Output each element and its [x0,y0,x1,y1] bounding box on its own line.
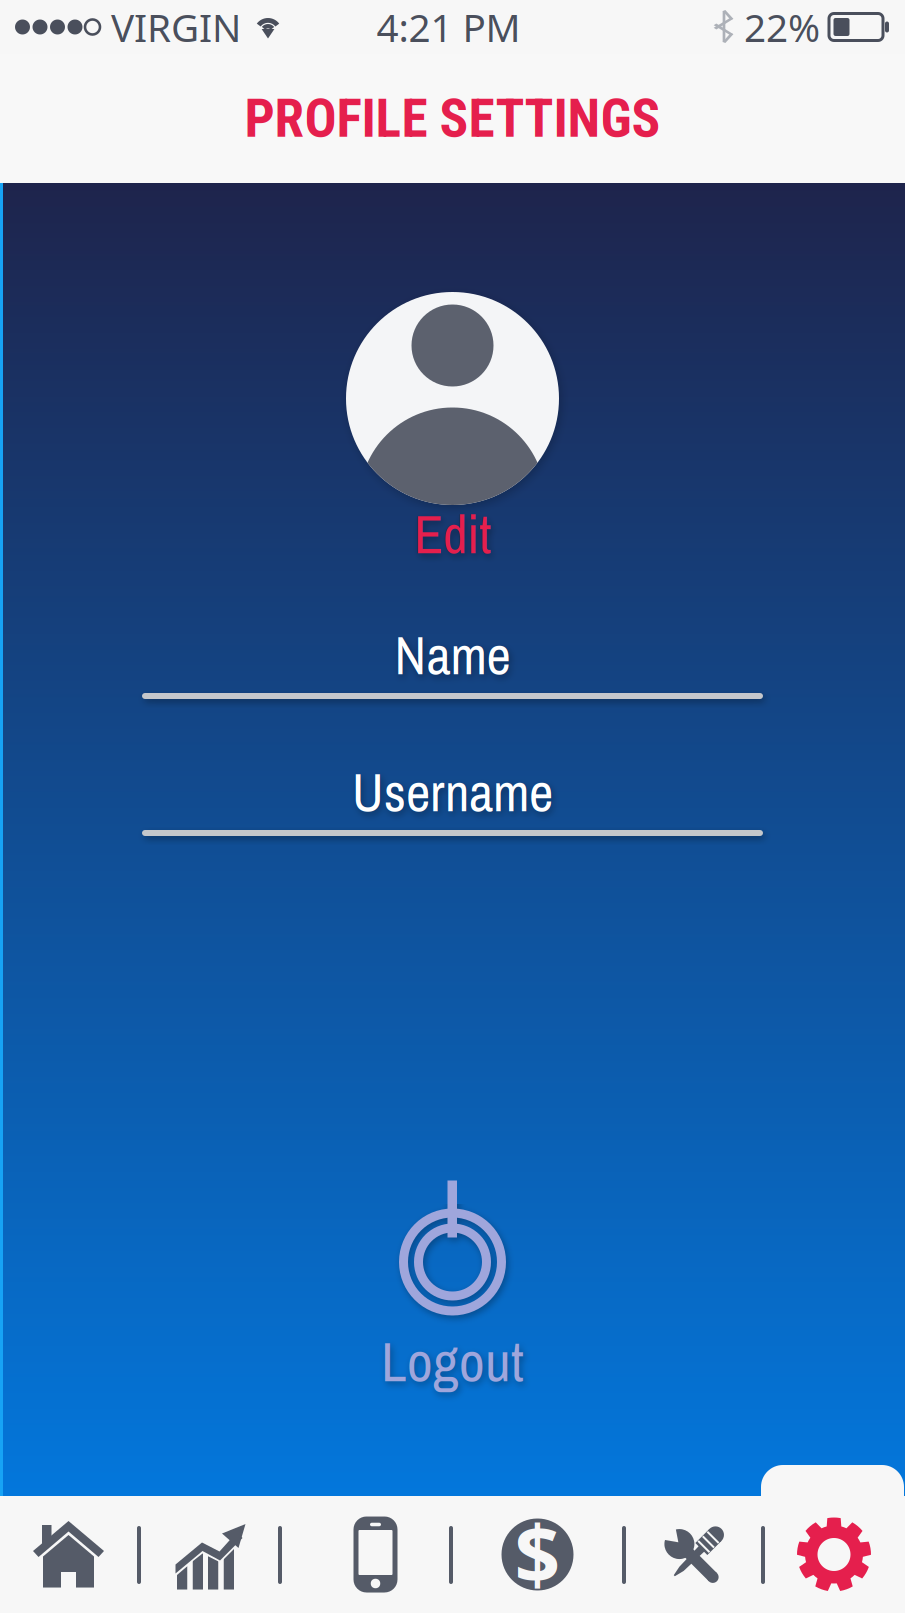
button[interactable]: Settings [765,1496,903,1613]
button[interactable]: Logout [381,1207,524,1385]
staticText: Username [352,756,553,828]
button[interactable]: Edit [346,292,559,558]
staticText: $ [514,1500,560,1607]
button[interactable]: Home [0,1496,137,1613]
button[interactable]: Billing [453,1496,622,1613]
button[interactable]: Tools [626,1496,759,1613]
button[interactable]: Statistics [141,1496,278,1613]
staticText: Logout [381,1323,524,1399]
staticText: Name [394,619,510,691]
staticText: VIRGIN [111,1,241,53]
staticText: PROFILE SETTINGS [244,87,660,150]
staticText: Edit [414,498,491,570]
button[interactable]: Device [292,1496,459,1613]
staticText: 22% [744,1,820,53]
staticText: 4:21 PM [376,1,520,53]
